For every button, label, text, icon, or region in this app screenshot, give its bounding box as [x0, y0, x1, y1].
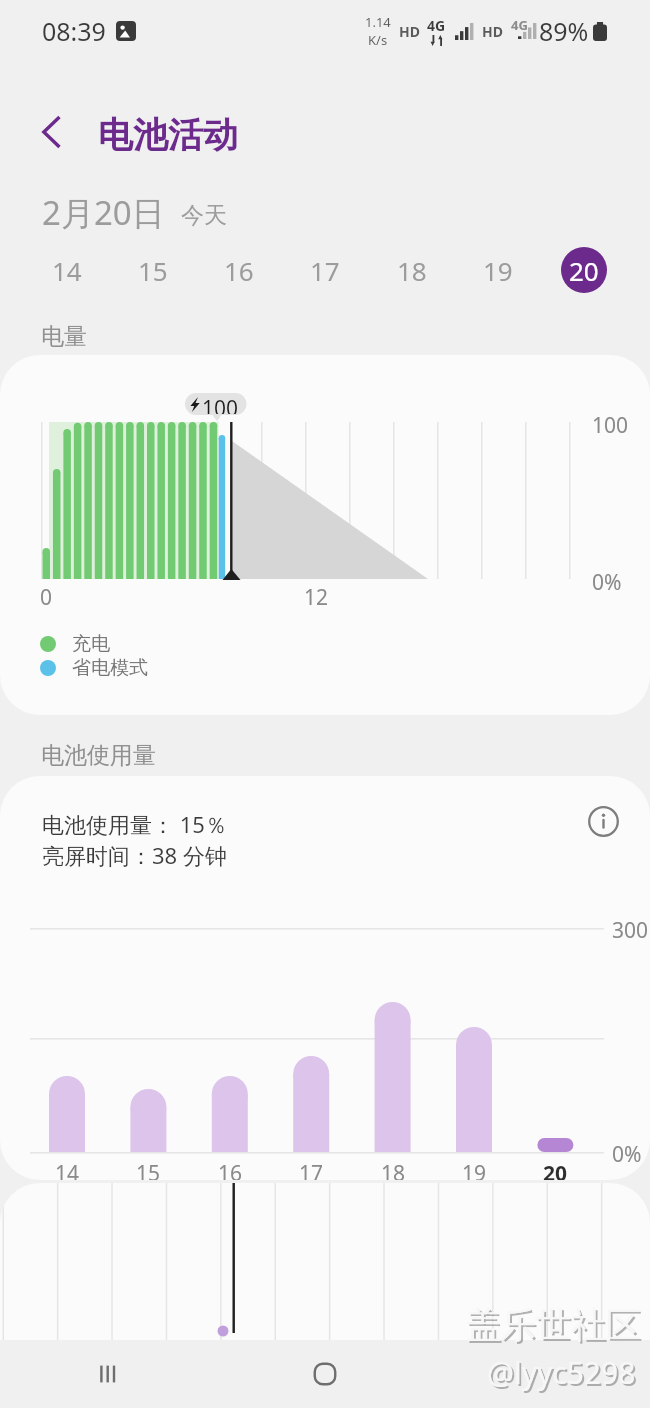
- staticText: 19: [462, 1159, 487, 1180]
- staticText: 100: [592, 411, 629, 440]
- button[interactable]: Recents: [0, 1340, 216, 1408]
- button[interactable]: 15: [130, 247, 176, 293]
- staticText: 14: [55, 1159, 80, 1180]
- staticText: 充电: [72, 632, 110, 656]
- button[interactable]: 18: [389, 247, 435, 293]
- staticText: 20: [569, 253, 599, 288]
- staticText: 0%: [612, 1140, 642, 1169]
- staticText: 0%: [592, 568, 622, 597]
- staticText: 4G: [427, 16, 446, 35]
- staticText: @lyyc5298: [487, 1352, 636, 1393]
- button[interactable]: 17: [302, 247, 348, 293]
- staticText: 电池使用量： 15％: [42, 809, 227, 839]
- staticText: 89%: [539, 14, 589, 48]
- staticText: 14: [52, 253, 82, 288]
- staticText: 今天: [181, 201, 227, 230]
- staticText: HD: [482, 22, 503, 41]
- staticText: HD: [399, 22, 420, 41]
- button[interactable]: 20: [561, 247, 607, 293]
- staticText: 0: [40, 583, 53, 612]
- staticText: 12: [304, 583, 329, 612]
- staticText: 19: [483, 253, 513, 288]
- staticText: 盖乐世社区: [468, 1305, 643, 1349]
- staticText: K/s: [368, 31, 388, 49]
- staticText: 2月20日: [42, 190, 165, 235]
- staticText: 1.14: [365, 13, 391, 31]
- staticText: 15: [136, 1159, 161, 1180]
- staticText: 15: [138, 253, 168, 288]
- staticText: 18: [397, 253, 427, 288]
- button[interactable]: Home: [216, 1340, 433, 1408]
- staticText: 电量: [41, 322, 87, 351]
- staticText: 16: [218, 1159, 243, 1180]
- staticText: 16: [224, 253, 254, 288]
- button[interactable]: 电池活动: [98, 113, 238, 157]
- staticText: 17: [299, 1159, 324, 1180]
- staticText: 18: [381, 1159, 406, 1180]
- staticText: 20: [543, 1159, 568, 1180]
- staticText: 亮屏时间：38 分钟: [42, 840, 227, 870]
- staticText: 盖乐世社区: [466, 1303, 641, 1347]
- staticText: @lyyc5298: [489, 1354, 638, 1395]
- staticText: 100: [202, 394, 239, 414]
- button[interactable]: Back navigation: [433, 1340, 650, 1408]
- button[interactable]: 19: [475, 247, 521, 293]
- staticText: 电池活动: [98, 113, 238, 157]
- staticText: 省电模式: [72, 656, 148, 680]
- staticText: 电池使用量: [41, 741, 156, 770]
- button[interactable]: Back: [24, 104, 80, 160]
- staticText: 08:39: [42, 14, 106, 48]
- staticText: 4G: [511, 16, 528, 34]
- button[interactable]: 16: [216, 247, 262, 293]
- staticText: 17: [310, 253, 340, 288]
- button[interactable]: 0: [0, 355, 650, 715]
- staticText: 300: [612, 916, 649, 945]
- button[interactable]: 电池使用量： 15％: [0, 776, 650, 1180]
- button[interactable]: Info: [583, 801, 623, 841]
- button[interactable]: 14: [44, 247, 90, 293]
